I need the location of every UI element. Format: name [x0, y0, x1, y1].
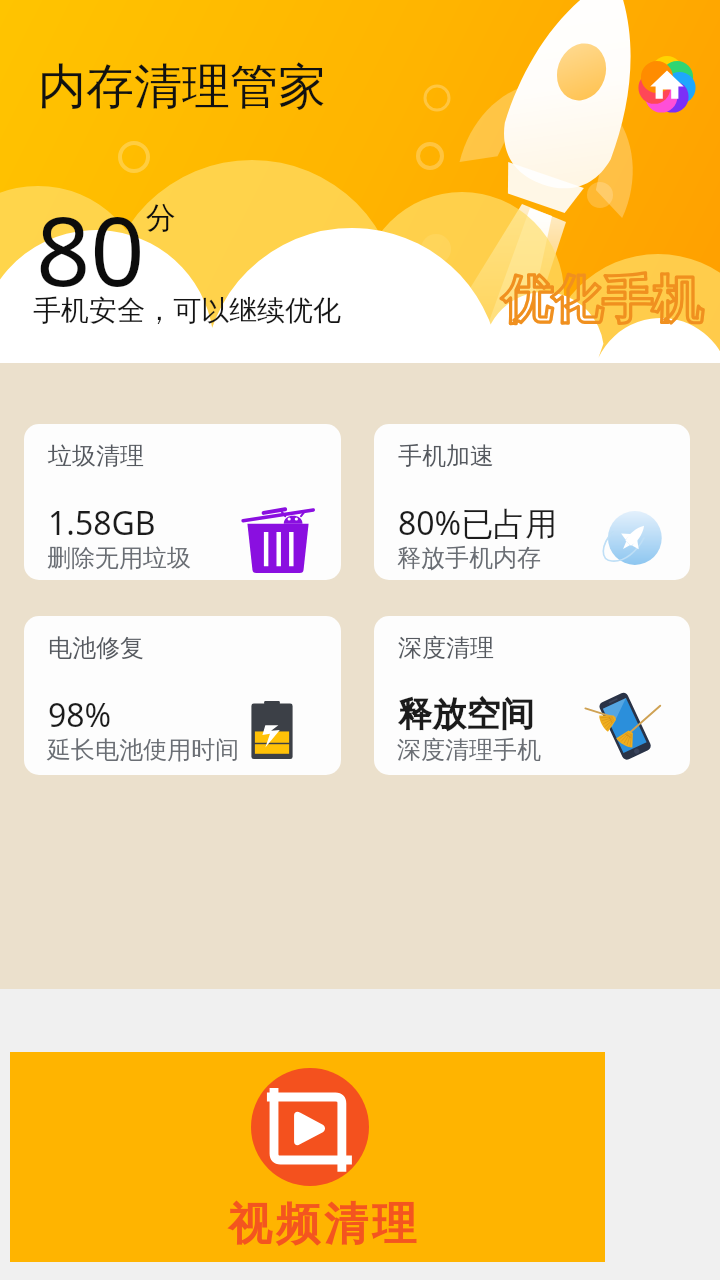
- button[interactable]: 手机加速: [374, 424, 690, 580]
- staticText: 98%: [48, 693, 112, 737]
- staticText: 1.58GB: [48, 501, 156, 545]
- staticText: 释放空间: [398, 693, 534, 736]
- button[interactable]: Home: [629, 47, 705, 123]
- staticText: 深度清理手机: [397, 735, 541, 765]
- button[interactable]: 视频清理: [10, 1052, 605, 1262]
- staticText: 深度清理: [398, 633, 494, 663]
- button[interactable]: 深度清理: [374, 616, 690, 775]
- staticText: 垃圾清理: [48, 441, 144, 471]
- staticText: 释放手机内存: [397, 543, 541, 573]
- staticText: 手机加速: [398, 441, 494, 471]
- staticText: 手机安全，可以继续优化: [33, 293, 341, 328]
- staticText: 80%已占用: [398, 501, 558, 545]
- staticText: 内存清理管家: [38, 57, 326, 117]
- staticText: 优化手机: [502, 269, 702, 332]
- button[interactable]: 电池修复: [24, 616, 341, 775]
- staticText: 电池修复: [48, 633, 144, 663]
- staticText: 删除无用垃圾: [47, 543, 191, 573]
- staticText: 分: [146, 199, 176, 237]
- staticText: 视频清理: [226, 1197, 418, 1252]
- button[interactable]: 垃圾清理: [24, 424, 341, 580]
- staticText: 延长电池使用时间: [47, 735, 239, 765]
- staticText: 80: [36, 184, 145, 313]
